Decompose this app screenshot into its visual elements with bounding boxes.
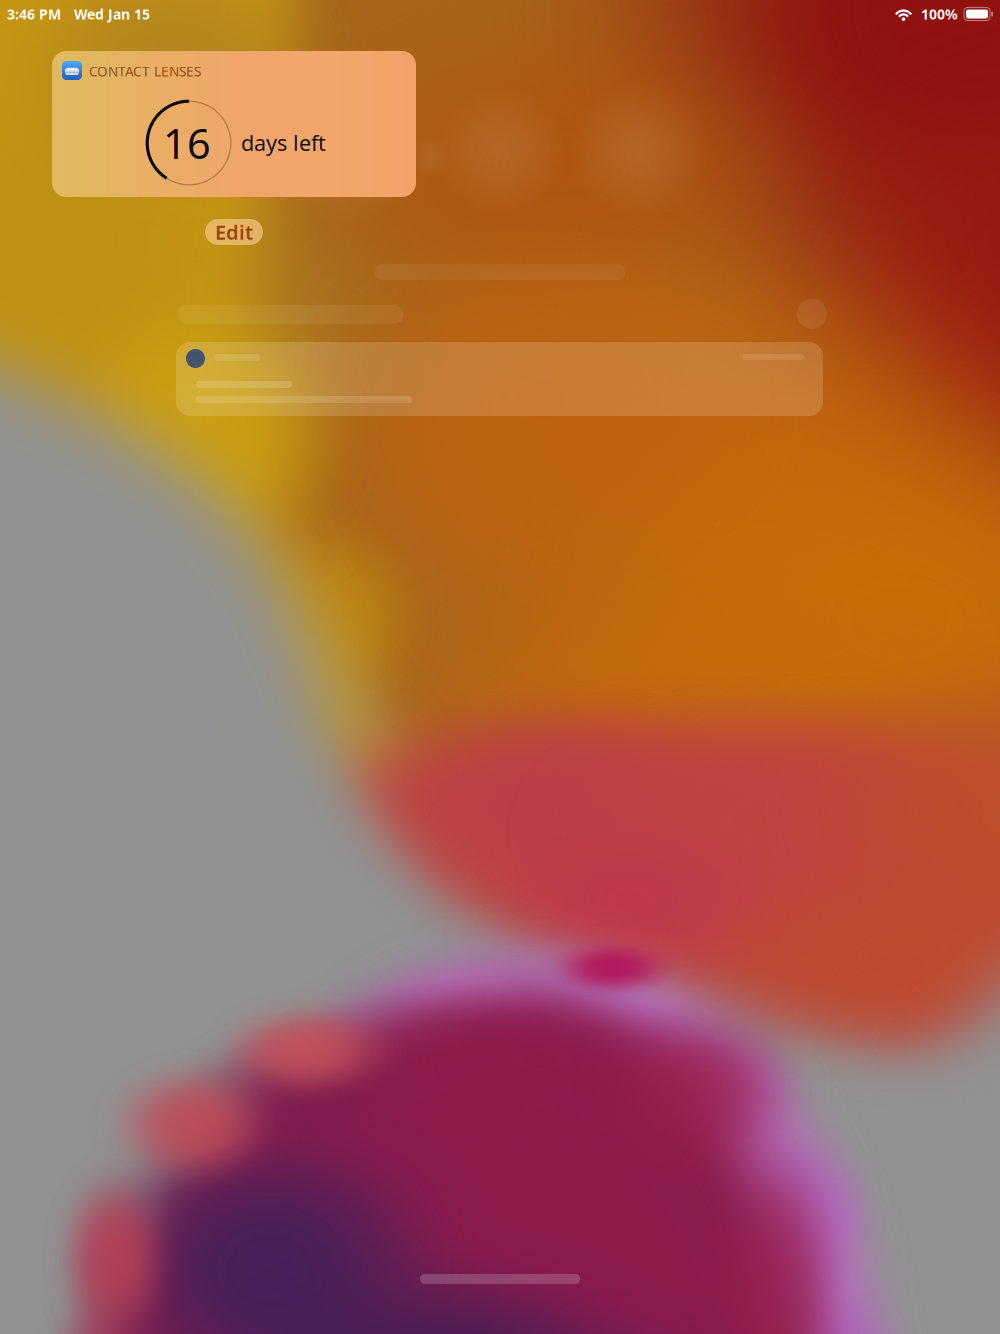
- staticText: CONTACT LENSES: [89, 62, 201, 80]
- staticText: Wed Jan 15: [74, 4, 150, 24]
- staticText: 16: [163, 115, 211, 171]
- staticText: Edit: [215, 219, 253, 245]
- staticText: days left: [241, 128, 326, 157]
- staticText: 3:46 PM: [7, 4, 61, 24]
- staticText: 100%: [921, 4, 958, 24]
- button[interactable]: Edit: [205, 219, 263, 245]
